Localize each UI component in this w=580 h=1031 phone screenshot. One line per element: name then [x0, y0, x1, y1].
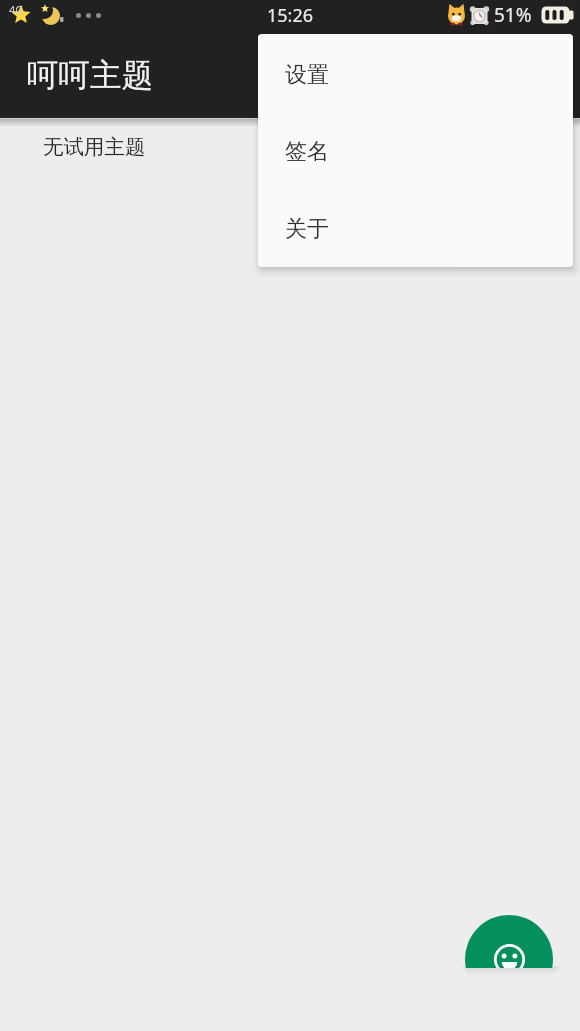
staticText: 关于	[285, 215, 329, 243]
staticText: 设置	[285, 61, 329, 89]
staticText: 4G	[9, 2, 24, 17]
button[interactable]: 签名	[258, 113, 573, 190]
staticText: 签名	[285, 138, 329, 166]
staticText: 无试用主题	[43, 134, 146, 160]
staticText: 51%	[494, 2, 532, 28]
button[interactable]: Add theme	[465, 915, 553, 968]
button[interactable]: 设置	[258, 36, 573, 113]
staticText: 15:26	[267, 3, 314, 28]
button[interactable]: 关于	[258, 190, 573, 267]
staticText: 呵呵主题	[27, 56, 153, 96]
